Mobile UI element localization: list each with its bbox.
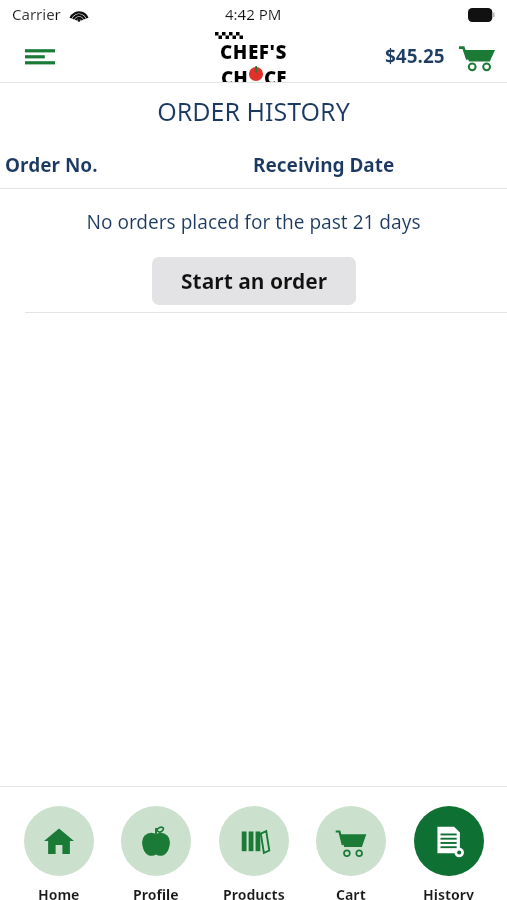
button[interactable]: Menu xyxy=(18,34,62,78)
staticText: CE xyxy=(264,65,287,82)
staticText: Cart xyxy=(336,885,366,900)
staticText: Home xyxy=(38,885,80,900)
button[interactable]: Profile xyxy=(117,806,195,900)
staticText: Start an order xyxy=(181,267,328,296)
button[interactable]: Products xyxy=(215,806,293,900)
staticText: 4:42 PM xyxy=(225,4,282,24)
staticText: Products xyxy=(223,885,285,900)
button[interactable]: History xyxy=(410,806,488,900)
button[interactable]: Cart xyxy=(312,806,390,900)
staticText: Receiving Date xyxy=(253,152,395,178)
staticText: Carrier xyxy=(12,4,61,24)
button[interactable]: Home xyxy=(20,806,98,900)
staticText: Order No. xyxy=(5,152,98,178)
staticText: CHEF'S xyxy=(220,39,288,65)
button[interactable]: $45.25 xyxy=(385,34,499,78)
staticText: $45.25 xyxy=(385,43,445,69)
other: Cart xyxy=(455,34,499,78)
staticText: No orders placed for the past 21 days xyxy=(0,209,507,235)
staticText: History xyxy=(423,885,475,900)
staticText: Profile xyxy=(133,885,179,900)
button[interactable]: Start an order xyxy=(152,257,356,305)
staticText: CH xyxy=(221,65,248,82)
staticText: ORDER HISTORY xyxy=(0,94,507,128)
